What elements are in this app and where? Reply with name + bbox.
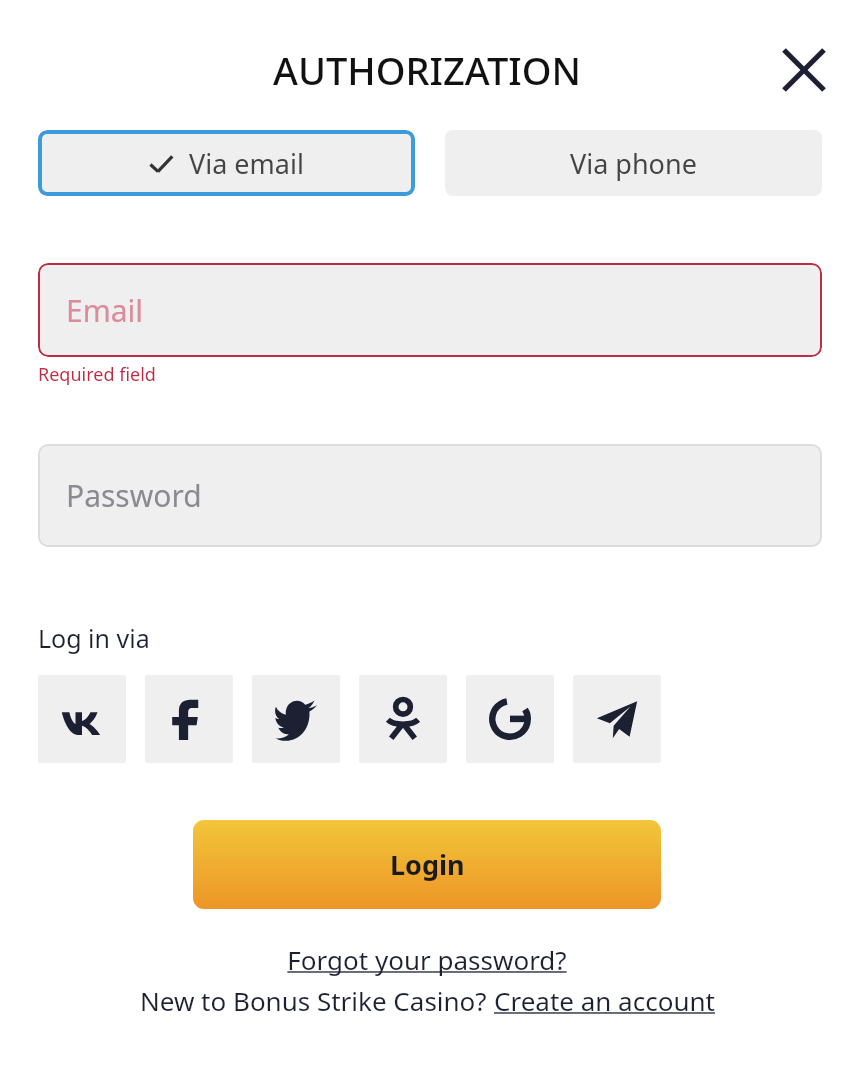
button[interactable]: Forgot your password? [287, 942, 567, 977]
staticText: Password [66, 475, 202, 516]
button[interactable]: Odnoklassniki [359, 675, 447, 763]
button[interactable]: Login [193, 820, 661, 909]
staticText: Required field [38, 362, 156, 387]
button[interactable]: Twitter [252, 675, 340, 763]
button[interactable]: Google [466, 675, 554, 763]
staticText: Log in via [38, 621, 150, 655]
staticText: AUTHORIZATION [273, 44, 582, 96]
staticText: Login [390, 846, 465, 883]
button[interactable]: Password [38, 444, 822, 547]
button[interactable]: Email [38, 263, 822, 357]
staticText: Forgot your password? [287, 942, 567, 977]
staticText: Via phone [570, 145, 697, 182]
button[interactable]: Via email [38, 130, 415, 196]
button[interactable]: Telegram [573, 675, 661, 763]
staticText: Create an account [494, 983, 715, 1018]
button[interactable]: Facebook [145, 675, 233, 763]
button[interactable]: Close [772, 38, 836, 102]
button[interactable]: Create an account [494, 983, 715, 1018]
button[interactable]: Via phone [445, 130, 822, 196]
staticText: Email [66, 290, 144, 331]
staticText: New to Bonus Strike Casino? [140, 983, 494, 1018]
staticText: Via email [189, 145, 304, 182]
button[interactable]: VK [38, 675, 126, 763]
